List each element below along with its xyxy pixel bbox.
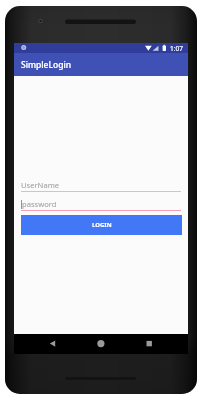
staticText: 1:07 — [170, 44, 183, 53]
staticText: SimpleLogin — [21, 59, 72, 71]
staticText: password — [22, 199, 57, 209]
button[interactable]: password — [21, 199, 181, 211]
button[interactable]: Recent apps — [134, 334, 158, 354]
staticText: LOGIN — [92, 221, 112, 229]
button[interactable]: Back — [44, 334, 68, 354]
button[interactable]: LOGIN — [21, 215, 182, 235]
staticText: UserName — [21, 180, 60, 190]
button[interactable]: Home — [89, 334, 113, 354]
button[interactable]: UserName — [21, 180, 181, 192]
button[interactable]: SimpleLogin — [14, 53, 188, 76]
